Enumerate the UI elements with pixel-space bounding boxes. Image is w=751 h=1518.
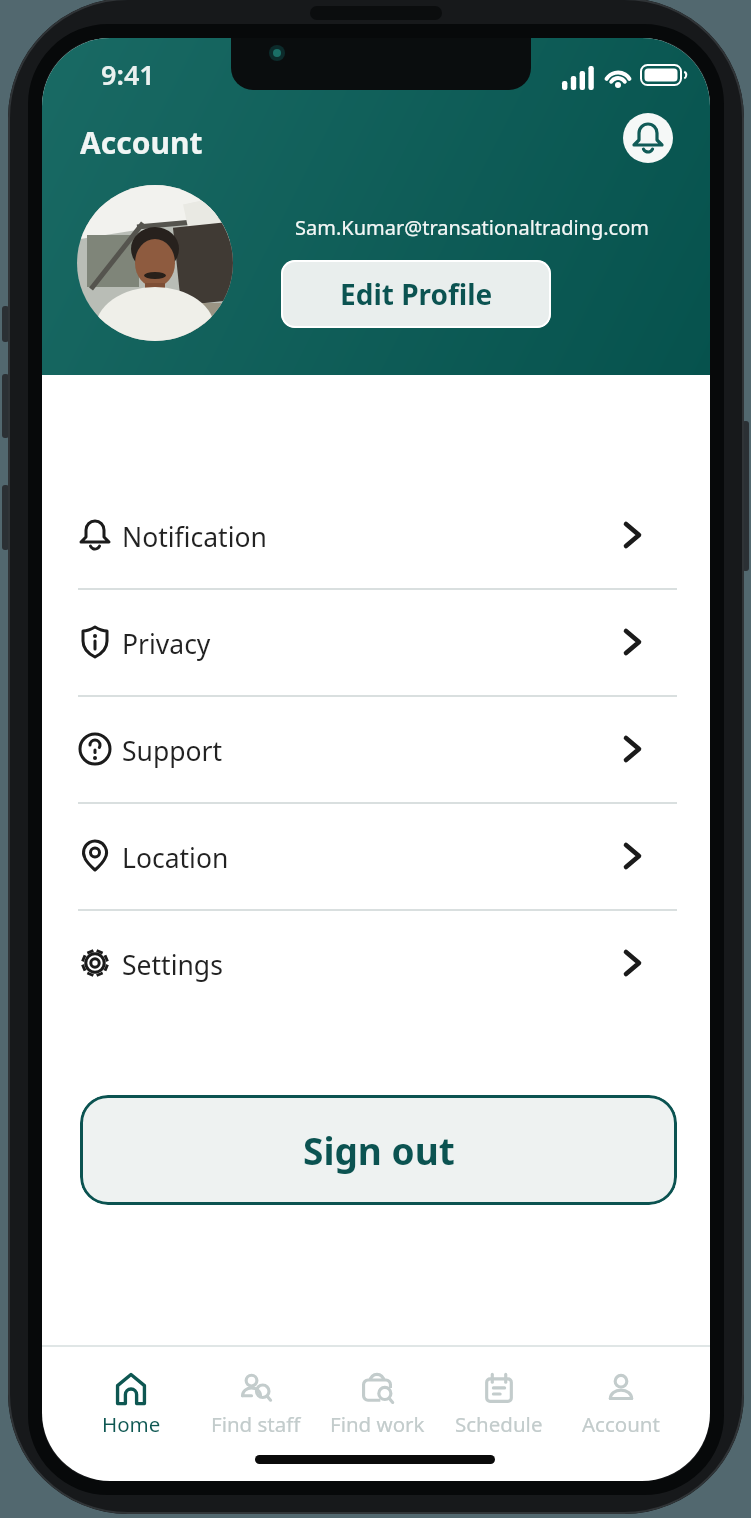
button[interactable]: Support [72,696,682,802]
staticText: Notification [122,519,267,555]
button[interactable]: Settings [72,910,682,1016]
button[interactable] [623,113,673,163]
staticText: Privacy [122,626,211,662]
button[interactable]: Sign out [80,1095,677,1205]
button[interactable]: Privacy [72,589,682,695]
staticText: Sign out [303,1125,455,1175]
staticText: Find staff [211,1410,301,1438]
staticText: Home [102,1410,161,1438]
staticText: 9:41 [101,56,155,90]
button[interactable]: Find work [317,1354,437,1446]
staticText: Schedule [455,1410,543,1438]
staticText: Account [582,1410,660,1438]
staticText: Support [122,733,223,769]
button[interactable]: Account [561,1354,681,1446]
button[interactable]: Edit Profile [281,260,551,328]
button[interactable]: Home [71,1354,191,1446]
button[interactable]: Find staff [196,1354,316,1446]
staticText: Account [80,122,203,163]
button[interactable]: Location [72,803,682,909]
staticText: Sam.Kumar@transationaltrading.com [295,214,650,241]
staticText: Location [122,840,229,876]
staticText: Find work [330,1410,425,1438]
staticText: Edit Profile [340,275,493,313]
staticText: Settings [122,947,223,983]
button[interactable]: Notification [72,482,682,588]
button[interactable]: Schedule [439,1354,559,1446]
